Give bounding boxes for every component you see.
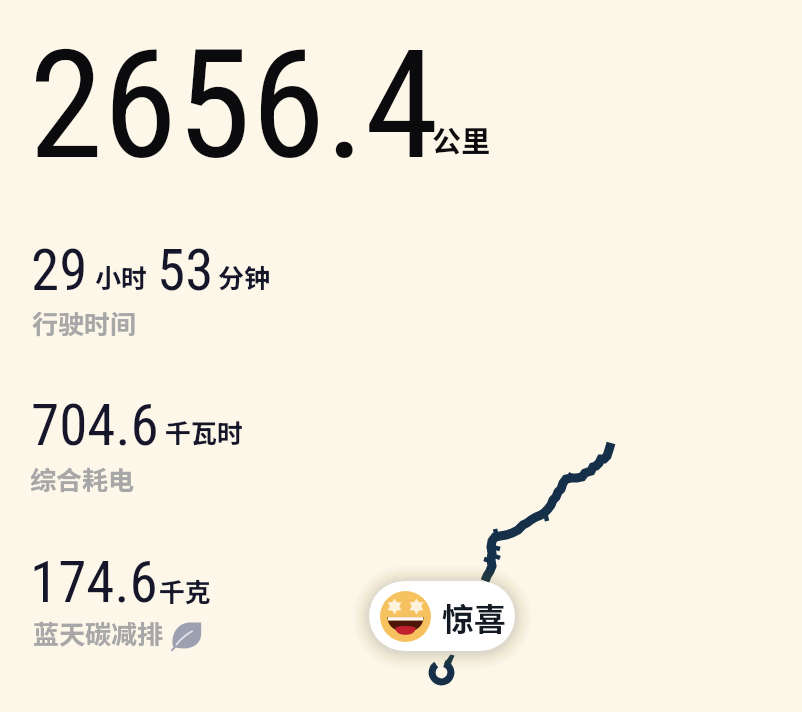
staticText: 行驶时间 (32, 304, 137, 342)
button[interactable] (24, 552, 284, 652)
staticText: 29 (31, 237, 88, 304)
staticText: 蓝天碳减排 (33, 614, 164, 652)
staticText: 704.6 (31, 392, 159, 459)
staticText: 2656.4 (29, 18, 439, 194)
staticText: 174.6 (30, 549, 158, 616)
staticText: 分钟 (218, 258, 271, 296)
button[interactable] (24, 396, 284, 496)
staticText: 公里 (432, 118, 491, 160)
staticText: 小时 (95, 258, 148, 296)
staticText: 53 (157, 237, 214, 304)
button[interactable]: Star struck emoji (369, 581, 515, 651)
button[interactable] (24, 240, 284, 340)
button[interactable] (24, 30, 504, 170)
staticText: 惊喜 (442, 594, 507, 640)
staticText: 千克 (159, 572, 212, 610)
other: Star struck emoji (380, 591, 431, 642)
staticText: 千瓦时 (165, 413, 244, 451)
staticText: 综合耗电 (30, 460, 135, 498)
other: Carbon reduction leaf (169, 618, 204, 653)
